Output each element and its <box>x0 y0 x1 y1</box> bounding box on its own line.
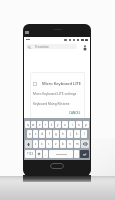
button[interactable]: Key <box>80 150 89 158</box>
staticText: e <box>39 123 41 127</box>
button[interactable]: Translate <box>26 44 77 49</box>
button[interactable]: g <box>53 130 59 138</box>
staticText: m <box>76 142 79 146</box>
staticText: d <box>41 132 43 136</box>
button[interactable]: y <box>55 121 61 128</box>
button[interactable]: r <box>43 121 48 128</box>
button[interactable]: t <box>49 121 54 128</box>
staticText: w <box>32 123 35 127</box>
button[interactable]: Home <box>50 163 64 169</box>
staticText: f <box>49 132 50 136</box>
button[interactable]: , <box>43 150 48 158</box>
button[interactable]: e <box>37 121 42 128</box>
staticText: y <box>57 123 59 127</box>
staticText: j <box>70 132 71 136</box>
button[interactable]: x <box>39 140 45 148</box>
button[interactable]: z <box>33 140 38 148</box>
button[interactable]: Key <box>81 140 89 148</box>
button[interactable]: h <box>60 130 66 138</box>
staticText: u <box>64 123 66 127</box>
button[interactable]: Account <box>82 44 88 50</box>
button[interactable]: ?123 <box>25 150 35 158</box>
button[interactable]: q <box>25 121 30 128</box>
button[interactable]: . <box>74 150 79 158</box>
staticText: k <box>76 132 78 136</box>
button[interactable]: Key <box>25 140 32 148</box>
staticText: x <box>41 142 43 146</box>
button[interactable]: s <box>33 130 38 138</box>
button[interactable]: Micro Keyboard LITE settings <box>33 92 82 96</box>
button[interactable]: CANCEL <box>68 110 82 116</box>
button[interactable]: w <box>31 121 36 128</box>
staticText: , <box>45 152 46 156</box>
button[interactable]: m <box>74 140 80 148</box>
button[interactable]: n <box>67 140 73 148</box>
button[interactable]: f <box>46 130 52 138</box>
staticText: p <box>85 123 87 127</box>
staticText: Micro Keyboard LITE <box>42 81 82 86</box>
staticText: CANCEL <box>69 111 81 115</box>
staticText: l <box>84 132 85 136</box>
button[interactable]: v <box>53 140 59 148</box>
staticText: Micro Keyboard LITE settings <box>33 92 77 96</box>
staticText: b <box>62 142 64 146</box>
staticText: q <box>27 123 29 127</box>
button[interactable]: k <box>74 130 80 138</box>
staticText: h <box>62 132 64 136</box>
staticText: ?123 <box>27 152 34 156</box>
button[interactable]: Key <box>36 150 42 158</box>
staticText: s <box>35 132 37 136</box>
staticText: t <box>51 123 53 127</box>
button[interactable]: Key <box>49 150 73 158</box>
staticText: Keyboard Mang Rilstone <box>33 102 70 106</box>
button[interactable]: c <box>46 140 52 148</box>
button[interactable]: l <box>81 130 87 138</box>
button[interactable]: a <box>27 130 32 138</box>
button[interactable]: p <box>83 121 89 128</box>
staticText: a <box>29 132 31 136</box>
button[interactable]: Keyboard Mang Rilstone <box>33 102 82 106</box>
staticText: Translate <box>35 45 49 49</box>
staticText: v <box>55 142 57 146</box>
staticText: z <box>35 142 37 146</box>
staticText: r <box>45 123 47 127</box>
button[interactable]: o <box>76 121 82 128</box>
staticText: i <box>72 123 73 127</box>
button[interactable]: Micro Keyboard LITE <box>33 81 82 86</box>
staticText: n <box>69 142 71 146</box>
staticText: o <box>78 123 80 127</box>
button[interactable]: d <box>39 130 45 138</box>
button[interactable]: b <box>60 140 66 148</box>
button[interactable]: u <box>62 121 68 128</box>
staticText: g <box>55 132 57 136</box>
staticText: . <box>76 152 77 156</box>
button[interactable]: j <box>67 130 73 138</box>
staticText: c <box>48 142 50 146</box>
button[interactable]: i <box>69 121 75 128</box>
